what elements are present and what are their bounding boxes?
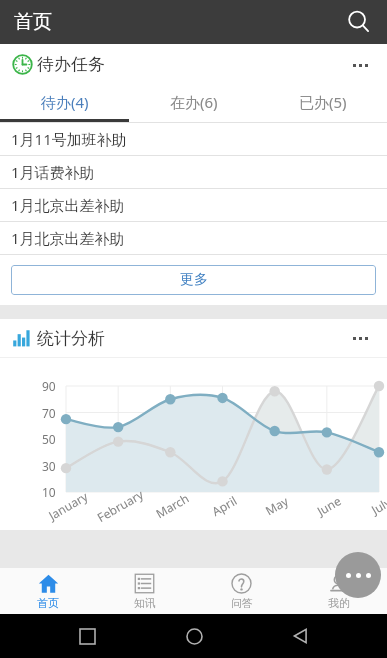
button[interactable]: 我的 bbox=[290, 568, 387, 614]
staticText: 首页 bbox=[14, 10, 52, 34]
staticText: 1月11号加班补助 bbox=[11, 129, 127, 149]
staticText: 待办(4) bbox=[41, 92, 89, 112]
staticText: 统计分析 bbox=[37, 328, 105, 349]
staticText: 知讯 bbox=[134, 596, 156, 610]
button[interactable]: 待办(4) bbox=[0, 85, 129, 119]
staticText: 待办任务 bbox=[37, 54, 105, 75]
button[interactable]: 1月北京出差补助 bbox=[0, 222, 387, 254]
staticText: 已办(5) bbox=[299, 92, 347, 112]
button[interactable]: 更多 bbox=[11, 265, 376, 295]
button[interactable]: 1月11号加班补助 bbox=[0, 123, 387, 155]
button[interactable]: Back bbox=[280, 616, 320, 656]
staticText: 我的 bbox=[328, 596, 350, 610]
staticText: 1月北京出差补助 bbox=[11, 195, 125, 215]
button[interactable]: 1月北京出差补助 bbox=[0, 189, 387, 221]
staticText: 1月北京出差补助 bbox=[11, 228, 125, 248]
button[interactable]: 在办(6) bbox=[129, 85, 258, 119]
staticText: 1月话费补助 bbox=[11, 162, 95, 182]
button[interactable]: 1月话费补助 bbox=[0, 156, 387, 188]
button[interactable]: More bbox=[343, 48, 377, 82]
button[interactable]: 问答 bbox=[193, 568, 290, 614]
staticText: 首页 bbox=[37, 596, 59, 610]
staticText: 在办(6) bbox=[170, 92, 218, 112]
button[interactable]: 首页 bbox=[0, 568, 96, 614]
button[interactable]: 已办(5) bbox=[258, 85, 387, 119]
button[interactable]: More actions bbox=[335, 552, 381, 598]
staticText: 更多 bbox=[180, 271, 208, 289]
button[interactable]: More bbox=[343, 321, 377, 355]
button[interactable]: Home bbox=[174, 616, 214, 656]
button[interactable]: Recents bbox=[67, 616, 107, 656]
button[interactable]: Search bbox=[339, 2, 379, 42]
button[interactable]: 知讯 bbox=[96, 568, 193, 614]
staticText: 问答 bbox=[231, 596, 253, 610]
